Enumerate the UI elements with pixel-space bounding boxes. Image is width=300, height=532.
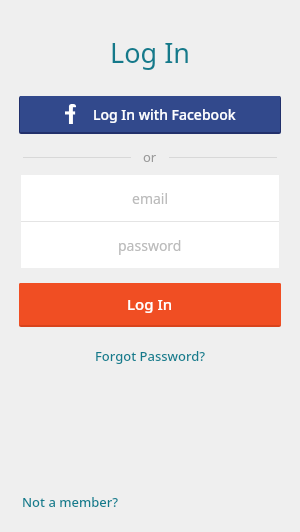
- button[interactable]: password: [21, 222, 279, 268]
- staticText: Not a member?: [22, 493, 119, 511]
- staticText: or: [143, 148, 157, 166]
- button[interactable]: Facebook: [20, 96, 280, 132]
- staticText: Log In with Facebook: [93, 105, 236, 124]
- button[interactable]: Not a member?: [14, 489, 127, 515]
- other: Facebook: [65, 104, 76, 124]
- button[interactable]: Forgot Password?: [87, 344, 214, 368]
- button[interactable]: email: [21, 175, 279, 221]
- staticText: Forgot Password?: [95, 347, 206, 365]
- staticText: password: [118, 236, 182, 255]
- staticText: email: [132, 189, 169, 208]
- staticText: Log In: [127, 294, 173, 314]
- button[interactable]: Log In: [19, 283, 281, 325]
- staticText: Log In: [0, 34, 300, 71]
